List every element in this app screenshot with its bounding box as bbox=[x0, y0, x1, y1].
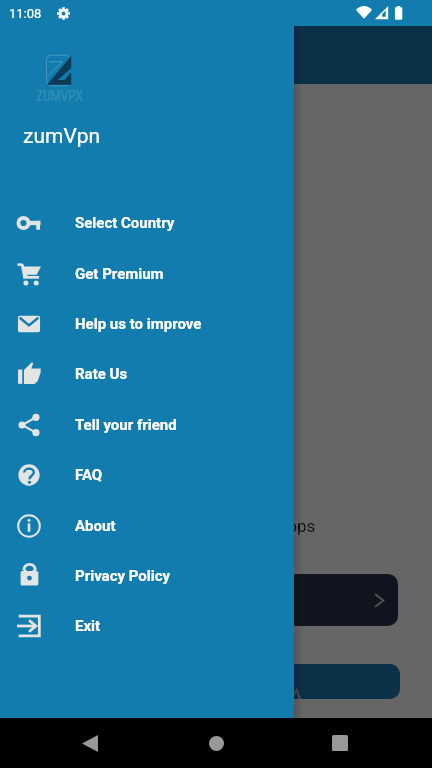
staticText: Exit bbox=[75, 617, 101, 635]
staticText: Split Tunneling Apps bbox=[161, 516, 316, 536]
button[interactable]: Select Country bbox=[0, 198, 294, 248]
button[interactable]: About bbox=[0, 501, 294, 551]
staticText: Rate Us bbox=[75, 365, 128, 383]
button[interactable] bbox=[170, 574, 398, 626]
button[interactable]: Home bbox=[198, 725, 234, 761]
staticText: FAQ bbox=[75, 466, 103, 484]
button[interactable]: FAQ bbox=[0, 450, 294, 500]
button[interactable]: Help us to improve bbox=[0, 299, 294, 349]
button[interactable] bbox=[170, 664, 400, 699]
button[interactable]: Close navigation drawer bbox=[0, 0, 432, 768]
button[interactable]: Rate Us bbox=[0, 349, 294, 399]
staticText: Help us to improve bbox=[75, 315, 202, 333]
staticText: Select Country bbox=[75, 214, 175, 232]
button[interactable]: Exit bbox=[0, 601, 294, 651]
staticText: 11:08 bbox=[9, 6, 42, 21]
button[interactable]: Get Premium bbox=[0, 249, 294, 299]
staticText: Privacy Policy bbox=[75, 567, 171, 585]
button[interactable]: Tell your friend bbox=[0, 400, 294, 450]
button[interactable]: Back bbox=[72, 725, 108, 761]
staticText: About bbox=[75, 517, 116, 535]
staticText: Tell your friend bbox=[75, 416, 177, 434]
staticText: zumVpn bbox=[23, 124, 101, 149]
staticText: ZUMVPX bbox=[36, 88, 83, 104]
button[interactable]: Privacy Policy bbox=[0, 551, 294, 601]
staticText: Get Premium bbox=[75, 265, 164, 283]
button[interactable]: Recents bbox=[322, 725, 358, 761]
